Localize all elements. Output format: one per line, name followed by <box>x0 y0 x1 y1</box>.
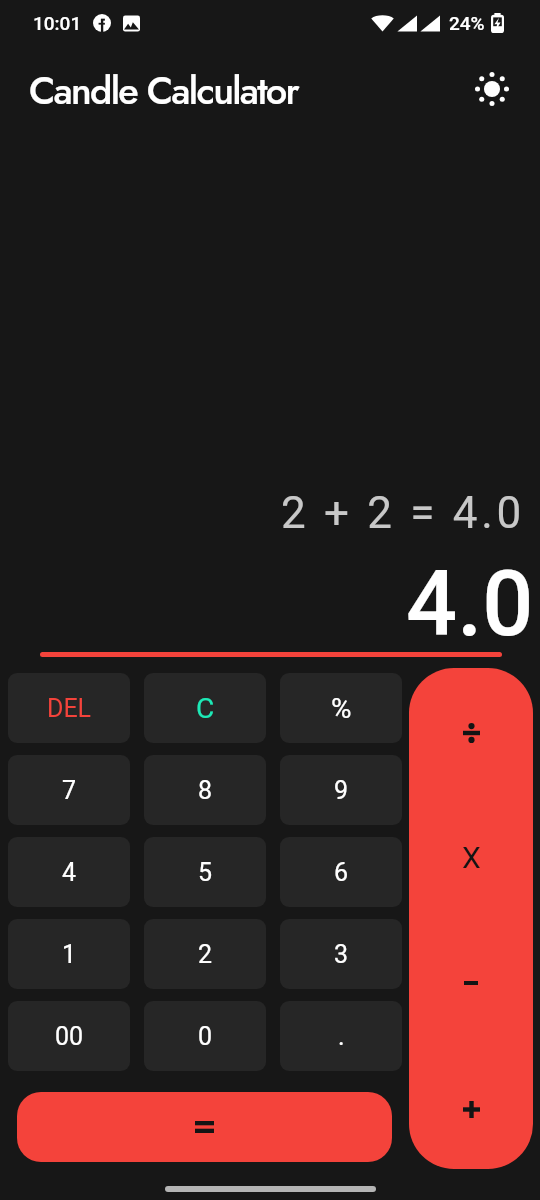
button[interactable]: 6 <box>280 837 402 907</box>
staticText: 8 <box>198 776 213 805</box>
button[interactable]: Equals <box>17 1092 392 1162</box>
button[interactable]: 4 <box>8 837 130 907</box>
button[interactable]: DEL <box>8 673 130 743</box>
button[interactable]: . <box>280 1001 402 1071</box>
staticText: 4 <box>62 858 77 887</box>
staticText: 7 <box>62 776 77 805</box>
button[interactable]: C <box>144 673 266 743</box>
staticText: C <box>196 692 215 725</box>
staticText: 2 <box>198 940 213 969</box>
button[interactable]: Minus <box>409 920 533 1046</box>
button[interactable]: 00 <box>8 1001 130 1071</box>
staticText: 2 + 2 = 4.0 <box>281 487 525 539</box>
button[interactable]: 3 <box>280 919 402 989</box>
button[interactable]: 1 <box>8 919 130 989</box>
button[interactable]: 2 <box>144 919 266 989</box>
button[interactable]: 0 <box>144 1001 266 1071</box>
button[interactable]: 8 <box>144 755 266 825</box>
button[interactable]: 5 <box>144 837 266 907</box>
staticText: DEL <box>47 694 92 723</box>
staticText: 6 <box>334 858 349 887</box>
staticText: 1 <box>62 940 77 969</box>
staticText: Candle Calculator <box>29 63 298 118</box>
button[interactable]: Divide <box>409 670 533 796</box>
button[interactable]: 9 <box>280 755 402 825</box>
staticText: X <box>462 840 481 875</box>
button[interactable]: Plus <box>409 1049 533 1169</box>
staticText: . <box>338 1022 345 1051</box>
button[interactable]: 7 <box>8 755 130 825</box>
staticText: 00 <box>55 1022 84 1051</box>
button[interactable]: % <box>280 673 402 743</box>
staticText: 9 <box>334 776 349 805</box>
staticText: 10:01 <box>33 12 82 34</box>
staticText: % <box>331 692 352 725</box>
staticText: 3 <box>334 940 349 969</box>
button[interactable]: Toggle theme <box>466 63 518 115</box>
staticText: 0 <box>198 1022 213 1051</box>
staticText: 24% <box>449 12 485 34</box>
staticText: 5 <box>198 858 213 887</box>
staticText: 4.0 <box>406 552 534 657</box>
button[interactable]: Multiply <box>409 794 533 920</box>
